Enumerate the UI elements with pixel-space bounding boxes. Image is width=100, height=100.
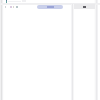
button[interactable] [73,4,95,9]
button[interactable] [37,5,63,9]
